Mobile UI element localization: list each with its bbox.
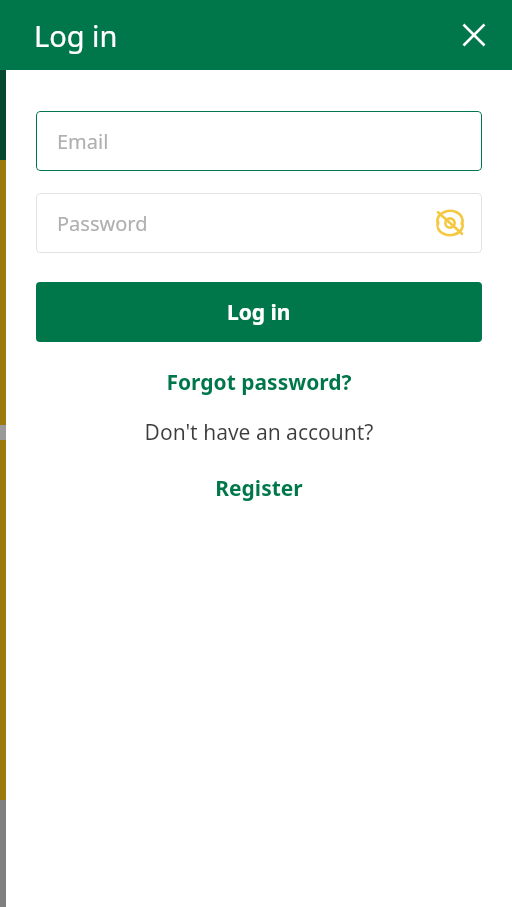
button[interactable]: Show password <box>430 203 470 243</box>
staticText: Email <box>57 128 109 155</box>
button[interactable]: Forgot password? <box>36 359 482 406</box>
staticText: Password <box>57 210 148 237</box>
staticText: Don't have an account? <box>36 418 482 447</box>
button[interactable]: Log in <box>36 282 482 342</box>
staticText: Log in <box>227 298 291 327</box>
button[interactable]: Close <box>452 13 496 57</box>
button[interactable]: Password <box>36 193 482 253</box>
staticText: Register <box>215 474 303 503</box>
button[interactable]: Email <box>36 111 482 171</box>
staticText: Log in <box>34 16 118 55</box>
staticText: Forgot password? <box>166 368 352 397</box>
button[interactable]: Register <box>36 465 482 512</box>
